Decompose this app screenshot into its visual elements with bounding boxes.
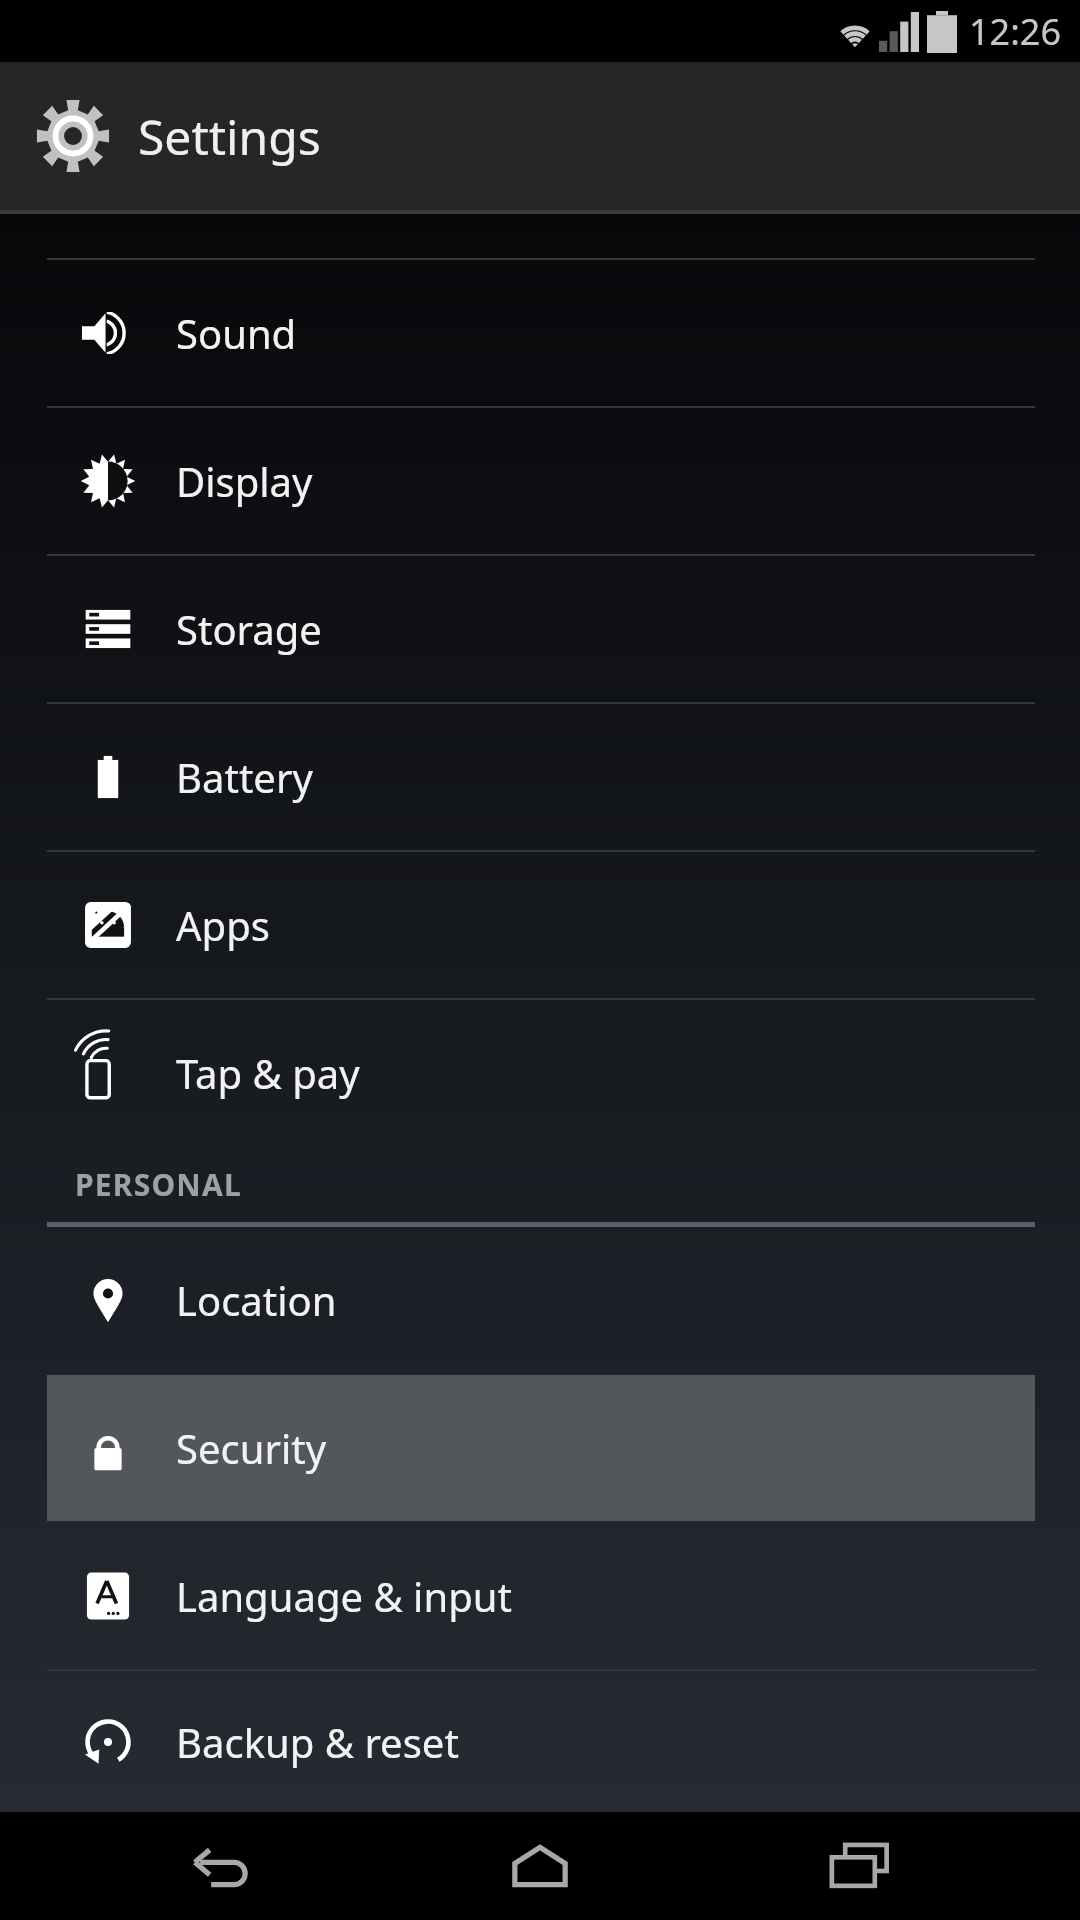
button[interactable]: Battery [0, 704, 1080, 850]
button[interactable]: Language & input [0, 1523, 1080, 1669]
button[interactable]: Tap & pay [0, 1000, 1080, 1146]
button[interactable]: Location [0, 1227, 1080, 1373]
button[interactable]: Back [120, 1812, 320, 1920]
staticText: Sound [176, 306, 297, 360]
button[interactable]: Sound [0, 260, 1080, 406]
staticText: Apps [176, 898, 270, 952]
button[interactable]: Backup & reset [0, 1671, 1080, 1812]
staticText: 12:26 [969, 7, 1062, 56]
staticText: Display [176, 454, 313, 508]
button[interactable]: Security [0, 1375, 1080, 1521]
button[interactable]: Display [0, 408, 1080, 554]
staticText: Language & input [176, 1569, 512, 1623]
button[interactable]: Recent apps [760, 1812, 960, 1920]
button[interactable]: Storage [0, 556, 1080, 702]
button[interactable]: Home [440, 1812, 640, 1920]
staticText: Backup & reset [176, 1715, 459, 1769]
staticText: Security [176, 1421, 327, 1475]
staticText: Location [176, 1273, 337, 1327]
staticText: Battery [176, 750, 313, 804]
staticText: PERSONAL [75, 1164, 242, 1205]
staticText: Storage [176, 602, 322, 656]
staticText: Settings [138, 104, 321, 169]
button[interactable]: Apps [0, 852, 1080, 998]
staticText: Tap & pay [176, 1046, 360, 1100]
